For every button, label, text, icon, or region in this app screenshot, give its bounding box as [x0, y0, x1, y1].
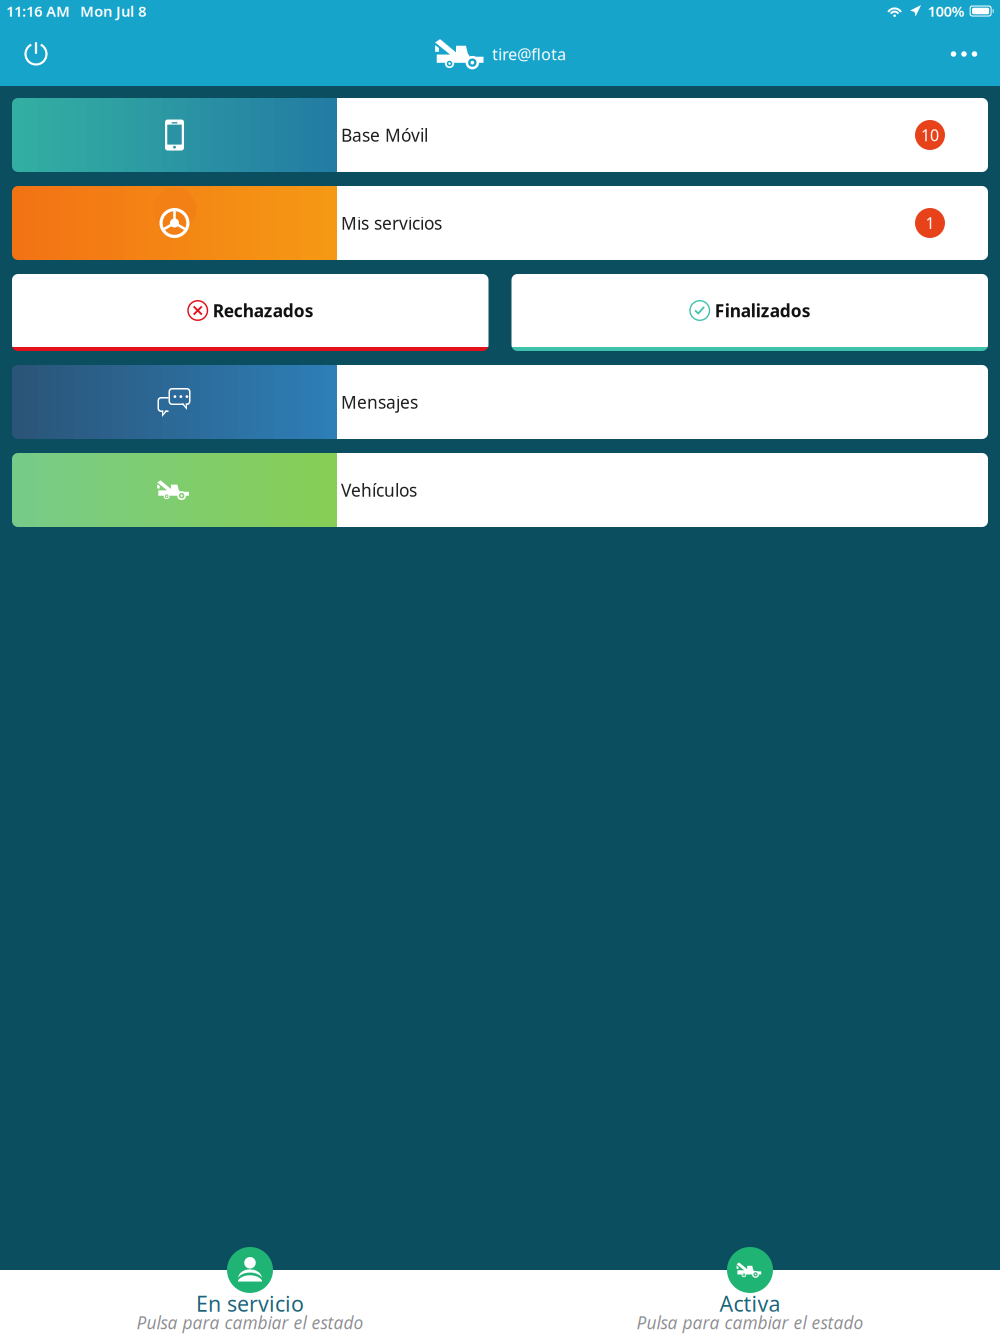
button[interactable]: Rechazados: [12, 274, 488, 351]
staticText: Finalizados: [715, 299, 811, 322]
staticText: Mis servicios: [341, 211, 442, 234]
staticText: Pulsa para cambiar el estado: [636, 1311, 863, 1334]
button[interactable]: Activa: [500, 1224, 1000, 1334]
button[interactable]: En servicio: [0, 1224, 500, 1334]
staticText: 10: [921, 124, 939, 146]
staticText: Vehículos: [341, 478, 417, 501]
staticText: Mon Jul 8: [80, 1, 146, 21]
button[interactable]: More: [942, 32, 986, 76]
button[interactable]: Power: [14, 32, 58, 76]
button[interactable]: Vehículos: [12, 453, 988, 527]
button[interactable]: Mis servicios: [12, 186, 988, 260]
staticText: Mensajes: [341, 390, 418, 413]
staticText: Rechazados: [213, 299, 314, 322]
staticText: Base Móvil: [341, 123, 428, 146]
button[interactable]: Finalizados: [511, 274, 988, 351]
staticText: 100%: [928, 1, 965, 21]
button[interactable]: Mensajes: [12, 365, 988, 439]
staticText: Pulsa para cambiar el estado: [136, 1311, 363, 1334]
staticText: En servicio: [196, 1289, 304, 1318]
staticText: 1: [925, 212, 934, 234]
button[interactable]: Base Móvil: [12, 98, 988, 172]
staticText: 11:16 AM: [6, 1, 70, 21]
staticText: Activa: [719, 1289, 780, 1318]
staticText: tire@flota: [492, 43, 566, 65]
